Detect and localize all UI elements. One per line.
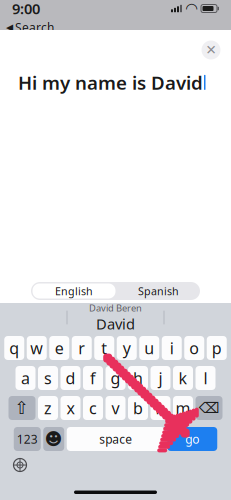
- staticText: Spanish: [138, 284, 179, 298]
- button[interactable]: Emoji: [43, 427, 64, 451]
- button[interactable]: w: [27, 336, 47, 360]
- button[interactable]: m: [173, 396, 193, 420]
- button[interactable]: u: [139, 336, 159, 360]
- staticText: u: [144, 337, 154, 359]
- staticText: David: [96, 314, 135, 333]
- staticText: p: [212, 337, 222, 359]
- staticText: v: [111, 397, 119, 419]
- staticText: y: [123, 337, 131, 359]
- staticText: ⌫: [198, 400, 219, 416]
- button[interactable]: r: [72, 336, 92, 360]
- staticText: t: [101, 337, 107, 359]
- staticText: x: [66, 397, 74, 419]
- staticText: ⇧: [14, 398, 29, 418]
- staticText: s: [44, 367, 52, 389]
- staticText: b: [133, 397, 143, 419]
- button[interactable]: s: [38, 366, 58, 390]
- staticText: Hi my name is David: [18, 70, 203, 95]
- staticText: r: [78, 337, 85, 359]
- staticText: z: [44, 397, 52, 419]
- staticText: f: [90, 367, 96, 389]
- button[interactable]: p: [207, 336, 227, 360]
- staticText: g: [110, 367, 120, 389]
- staticText: q: [9, 337, 19, 359]
- button[interactable]: i: [162, 336, 182, 360]
- button[interactable]: g: [105, 366, 125, 390]
- button[interactable]: l: [195, 366, 215, 390]
- staticText: space: [99, 431, 132, 447]
- button[interactable]: go: [167, 427, 217, 451]
- button[interactable]: Next keyboard: [6, 454, 34, 476]
- staticText: k: [178, 367, 187, 389]
- button[interactable]: q: [4, 336, 24, 360]
- button[interactable]: f: [83, 366, 103, 390]
- button[interactable]: b: [128, 396, 148, 420]
- staticText: i: [170, 337, 174, 359]
- button[interactable]: j: [150, 366, 170, 390]
- button[interactable]: v: [105, 396, 125, 420]
- staticText: English: [55, 284, 93, 298]
- staticText: 123: [17, 431, 38, 447]
- button[interactable]: o: [184, 336, 204, 360]
- button[interactable]: c: [83, 396, 103, 420]
- staticText: ✕: [205, 42, 216, 57]
- staticText: w: [30, 337, 43, 359]
- staticText: ◀: [6, 22, 13, 32]
- staticText: n: [155, 397, 165, 419]
- staticText: ◠: [186, 0, 197, 17]
- button[interactable]: Delete: [195, 396, 222, 420]
- button[interactable]: Shift: [8, 396, 35, 420]
- button[interactable]: n: [150, 396, 170, 420]
- button[interactable]: David Beren: [67, 303, 163, 331]
- staticText: d: [65, 367, 75, 389]
- button[interactable]: a: [15, 366, 35, 390]
- button[interactable]: d: [60, 366, 80, 390]
- staticText: m: [175, 397, 190, 419]
- button[interactable]: e: [49, 336, 69, 360]
- staticText: ☻: [45, 429, 63, 449]
- staticText: l: [203, 367, 207, 389]
- button[interactable]: Spanish: [117, 282, 200, 300]
- staticText: e: [55, 337, 64, 359]
- staticText: 9:00: [12, 0, 40, 18]
- button[interactable]: Numbers: [14, 427, 41, 451]
- button[interactable]: space: [67, 427, 165, 451]
- button[interactable]: Close: [197, 36, 225, 64]
- staticText: o: [189, 337, 199, 359]
- staticText: Search: [15, 19, 54, 35]
- button[interactable]: t: [94, 336, 114, 360]
- staticText: c: [89, 397, 97, 419]
- button[interactable]: z: [38, 396, 58, 420]
- button[interactable]: k: [173, 366, 193, 390]
- staticText: go: [185, 431, 199, 447]
- staticText: j: [158, 367, 162, 389]
- staticText: a: [21, 367, 30, 389]
- button[interactable]: English: [31, 282, 117, 300]
- staticText: h: [133, 367, 143, 389]
- button[interactable]: y: [117, 336, 137, 360]
- button[interactable]: x: [60, 396, 80, 420]
- button[interactable]: h: [128, 366, 148, 390]
- staticText: David Beren: [89, 302, 142, 314]
